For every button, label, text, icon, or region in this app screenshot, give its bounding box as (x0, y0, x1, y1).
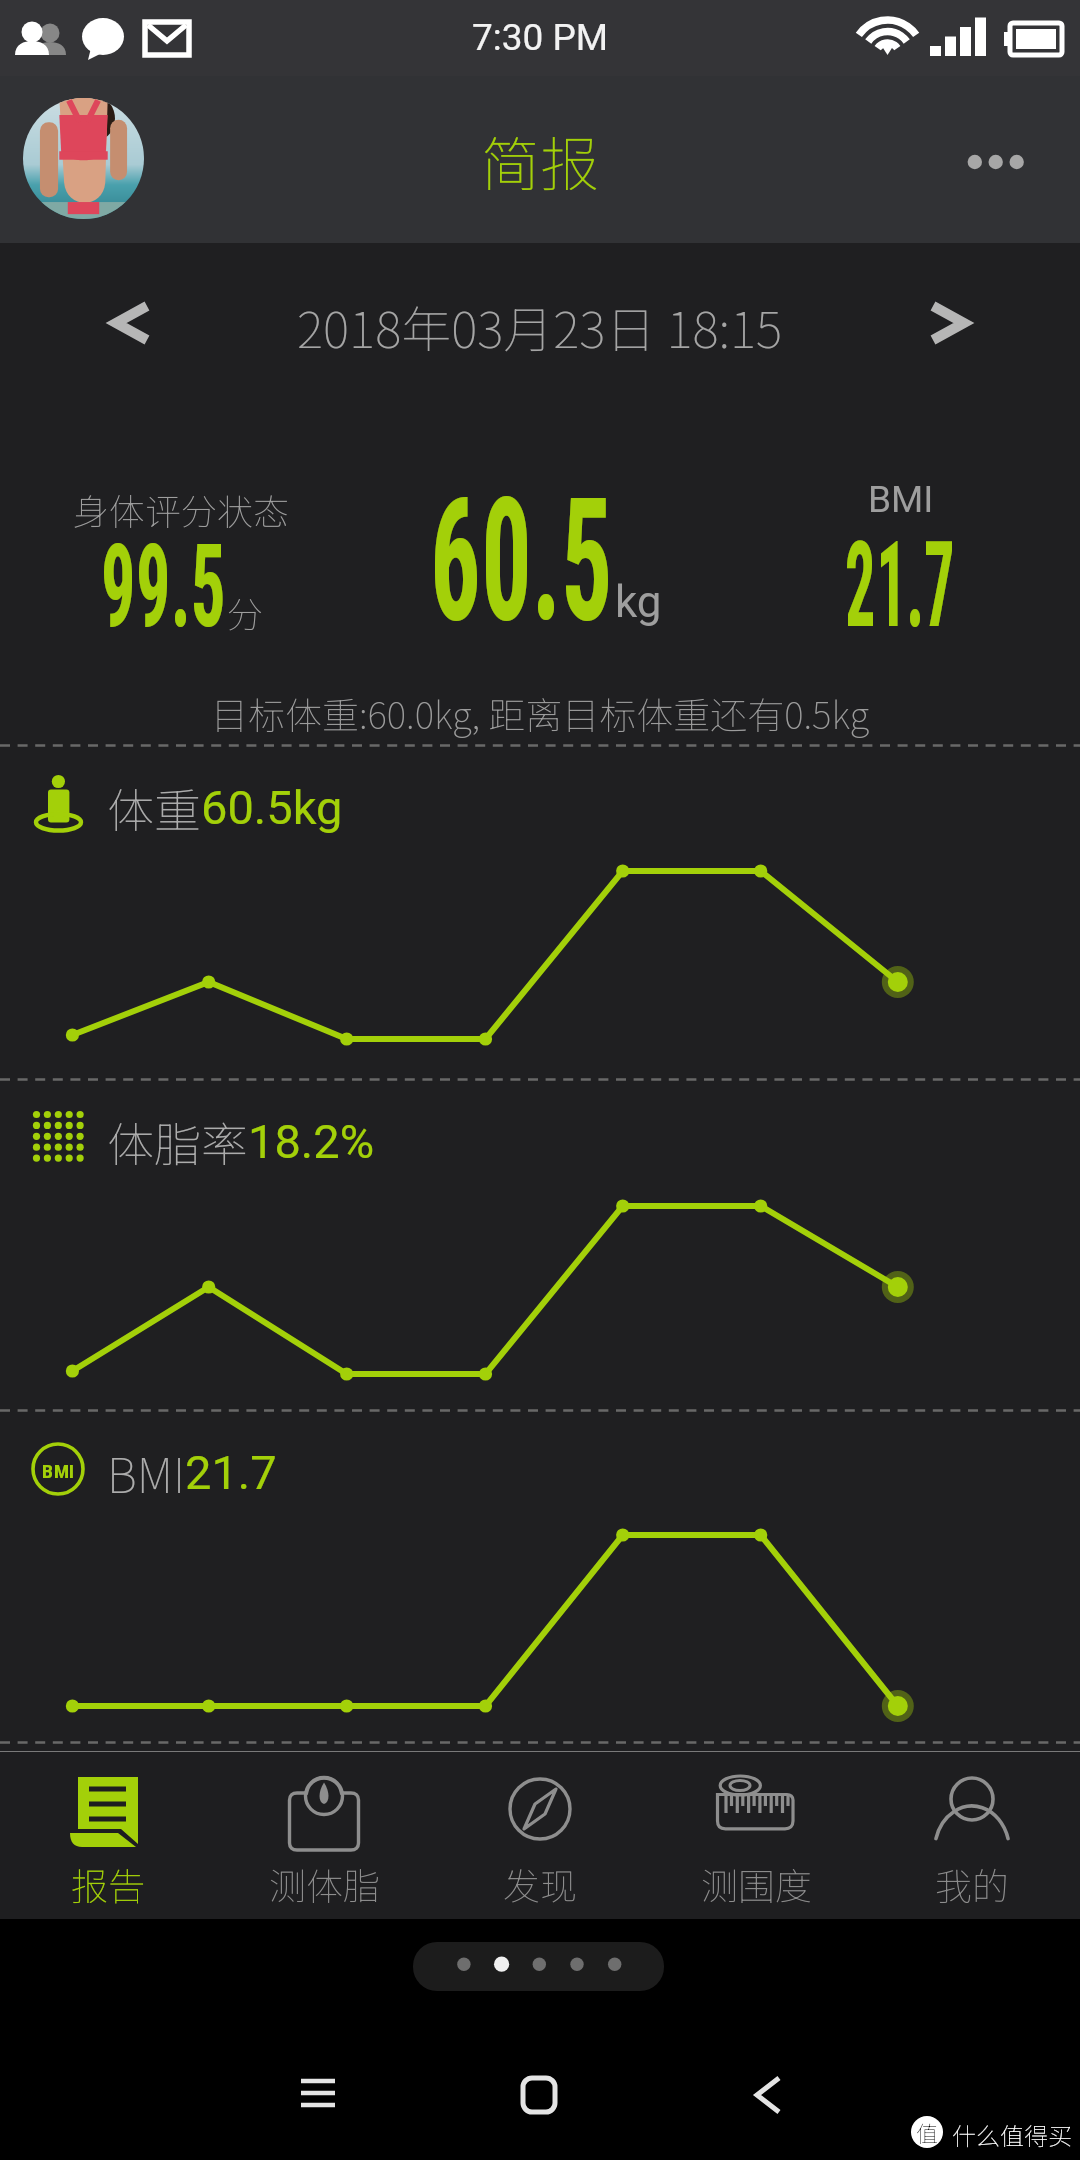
staticText: 我的 (935, 1857, 1009, 1911)
staticText: 发现 (503, 1857, 577, 1911)
staticText: 目标体重:60.0kg, 距离目标体重还有0.5kg (211, 686, 870, 740)
button[interactable]: Next day (850, 273, 1080, 373)
button[interactable]: Recent apps (238, 2035, 398, 2155)
button[interactable]: 体脂率18.2% (0, 1078, 1080, 1409)
button[interactable]: Home (459, 2035, 619, 2155)
staticText: 值 (916, 2116, 939, 2148)
button[interactable]: Profile photo (23, 98, 144, 219)
button[interactable]: 我的 (864, 1752, 1080, 1919)
staticText: 分 (227, 586, 264, 638)
staticText: 什么值得买 (952, 2117, 1072, 2152)
button[interactable]: 测围度 (648, 1752, 864, 1919)
staticText: 2018年03月23日 18:15 (297, 290, 783, 362)
button[interactable]: 测体脂 (216, 1752, 432, 1919)
staticText: kg (615, 576, 662, 628)
staticText: 体重 (107, 773, 201, 841)
staticText: 测体脂 (269, 1857, 380, 1911)
button[interactable]: 报告 (0, 1752, 216, 1919)
button[interactable]: Back (688, 2035, 848, 2155)
button[interactable]: Previous day (0, 273, 230, 373)
staticText: 简报 (481, 118, 600, 203)
button[interactable]: More options (948, 114, 1044, 210)
staticText: 60.5kg (201, 780, 343, 835)
staticText: 报告 (71, 1857, 145, 1911)
staticText: 21.7 (185, 1445, 277, 1500)
staticText: 7:30 PM (472, 16, 609, 59)
button[interactable]: 体重60.5kg (0, 744, 1080, 1078)
staticText: 测围度 (701, 1857, 812, 1911)
staticText: BMI (868, 478, 934, 521)
staticText: 18.2% (248, 1114, 375, 1169)
button[interactable]: 发现 (432, 1752, 648, 1919)
staticText: 体脂率 (107, 1107, 248, 1175)
button[interactable]: BMI21.7 (0, 1409, 1080, 1741)
staticText: 身体评分状态 (73, 483, 290, 535)
staticText: BMI (107, 1438, 185, 1506)
